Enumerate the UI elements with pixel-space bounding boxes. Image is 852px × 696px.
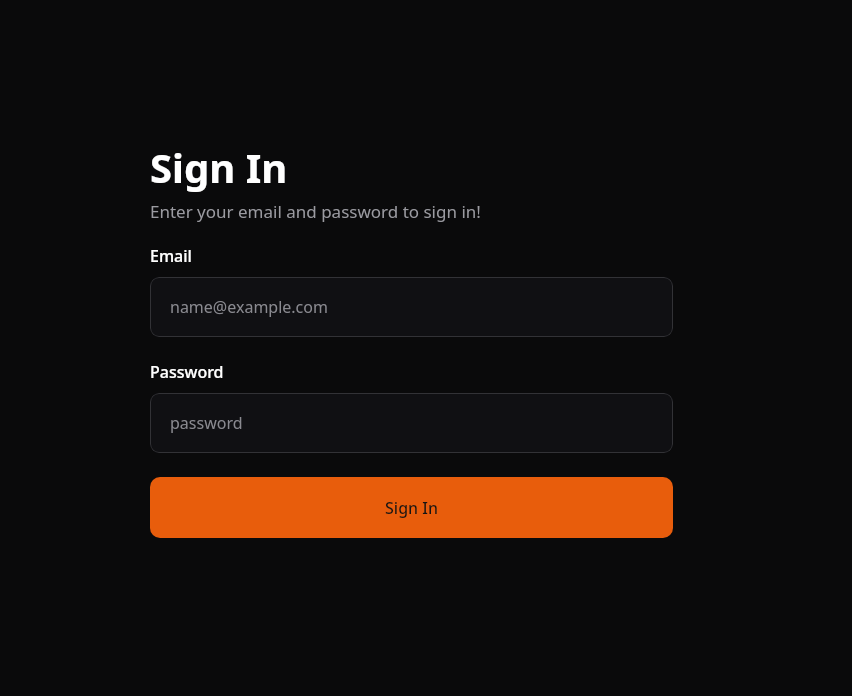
staticText: Enter your email and password to sign in… bbox=[150, 200, 481, 223]
staticText: password bbox=[170, 412, 243, 434]
staticText: Sign In bbox=[150, 140, 288, 194]
button[interactable]: Email input field bbox=[150, 277, 673, 337]
staticText: Sign In bbox=[385, 497, 438, 519]
staticText: Email bbox=[150, 245, 192, 267]
button[interactable]: Password input field bbox=[150, 393, 673, 453]
button[interactable]: Sign In bbox=[150, 477, 673, 538]
staticText: Password bbox=[150, 361, 224, 383]
staticText: name@example.com bbox=[170, 296, 328, 318]
